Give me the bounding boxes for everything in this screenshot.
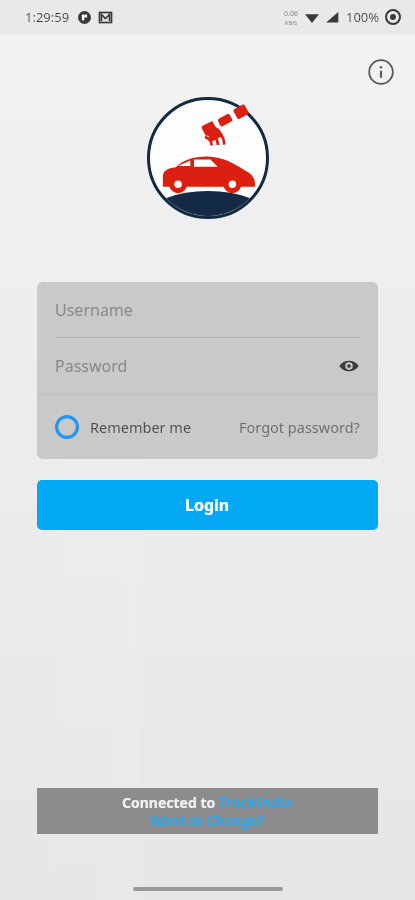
staticText: KB/S bbox=[285, 19, 298, 26]
button[interactable]: Password bbox=[37, 338, 378, 394]
staticText: 0.06 bbox=[284, 9, 298, 19]
staticText: Want to Change? bbox=[150, 812, 265, 830]
staticText: Contact no: bbox=[121, 794, 205, 813]
button[interactable]: Username bbox=[37, 282, 378, 337]
staticText: Username bbox=[55, 299, 133, 321]
button[interactable]: Forgot password? bbox=[235, 413, 364, 441]
button[interactable]: Remember me bbox=[55, 415, 192, 439]
staticText: Forgot password? bbox=[239, 417, 360, 437]
staticText: Password bbox=[55, 355, 128, 377]
staticText: TrackIndia bbox=[219, 793, 293, 812]
staticText: 1:29:59 bbox=[25, 8, 70, 26]
staticText: Login bbox=[185, 494, 230, 516]
button[interactable]: Show password bbox=[332, 349, 366, 383]
staticText: 01145081328 bbox=[205, 794, 294, 813]
staticText: Remember me bbox=[90, 417, 192, 437]
button[interactable]: Contact no: bbox=[103, 788, 311, 818]
button[interactable]: Login bbox=[37, 480, 378, 530]
staticText: 100% bbox=[346, 8, 380, 26]
staticText: Connected to bbox=[122, 793, 219, 812]
button[interactable]: Connected to bbox=[37, 788, 378, 834]
button[interactable]: Information bbox=[361, 52, 401, 92]
